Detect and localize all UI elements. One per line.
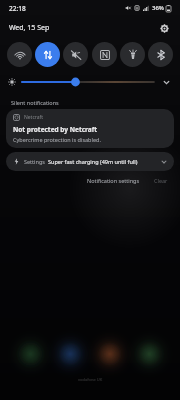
button[interactable]: Mobile data — [35, 42, 60, 67]
button[interactable]: Notification settings — [83, 175, 144, 186]
button[interactable]: Netcraft — [6, 109, 174, 148]
staticText: Wed, 15 Sep — [9, 23, 50, 33]
button[interactable]: Sound off — [63, 42, 88, 67]
button[interactable]: Clear — [150, 175, 172, 186]
button[interactable]: Bluetooth — [148, 42, 173, 67]
button[interactable]: Wi-Fi — [7, 42, 32, 67]
button[interactable]: Settings — [157, 21, 171, 35]
staticText: vodafone UK — [78, 377, 103, 382]
staticText: Super fast charging (49m until full) — [48, 158, 138, 165]
staticText: 36% — [152, 4, 164, 12]
button[interactable]: Expand quick settings — [160, 76, 172, 88]
staticText: Not protected by Netcraft — [13, 125, 98, 134]
button[interactable]: Settings — [6, 152, 174, 171]
staticText: Clear — [154, 177, 168, 184]
staticText: Cybercrime protection is disabled. — [13, 136, 101, 143]
staticText: Notification settings — [87, 177, 140, 184]
staticText: 22:18 — [9, 4, 26, 13]
button[interactable]: Brightness — [22, 75, 154, 89]
staticText: Netcraft — [24, 114, 44, 121]
staticText: Silent notifications — [11, 99, 59, 106]
staticText: Settings — [24, 158, 45, 165]
button[interactable]: Flashlight — [120, 42, 145, 67]
button[interactable]: NFC — [92, 42, 117, 67]
